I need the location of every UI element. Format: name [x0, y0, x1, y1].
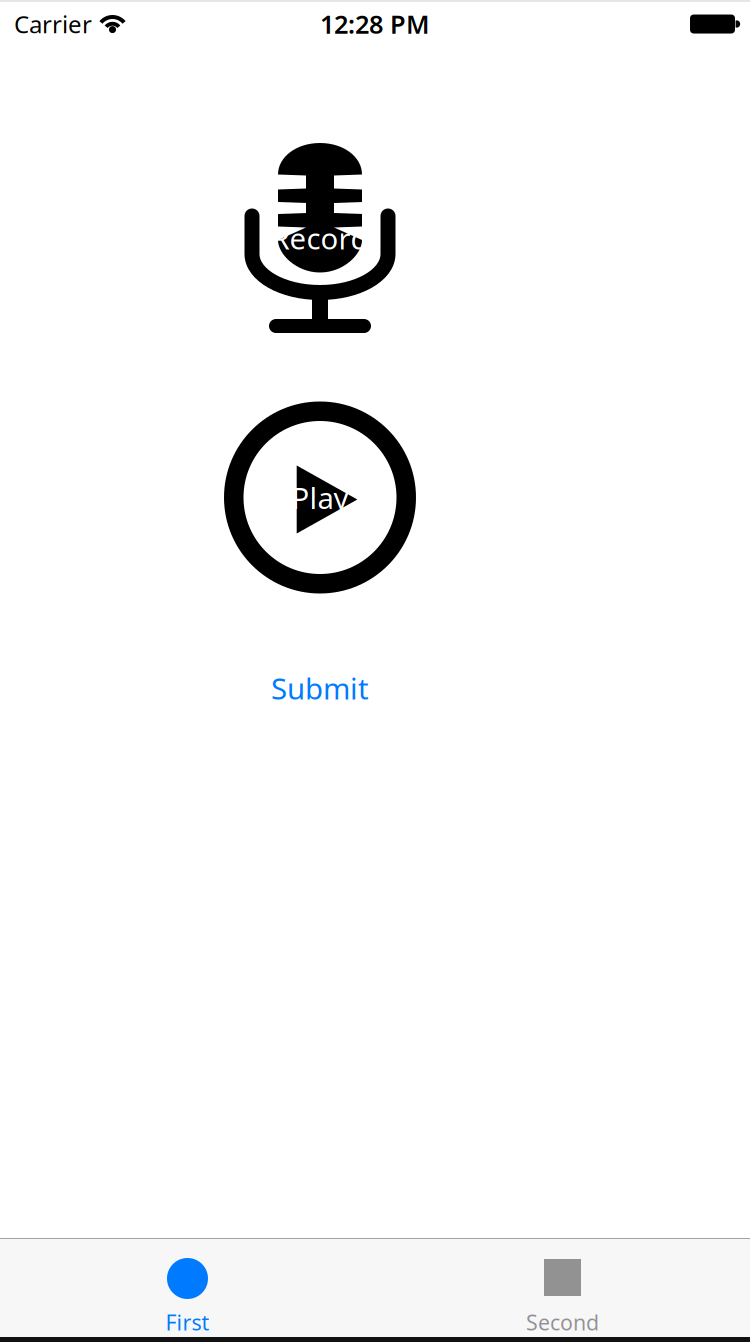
button[interactable]: Second	[375, 1239, 750, 1337]
staticText: Second	[526, 1308, 599, 1336]
staticText: First	[165, 1308, 209, 1336]
staticText: Record	[271, 218, 368, 257]
button[interactable]: First	[0, 1239, 375, 1337]
staticText: Play	[291, 478, 348, 517]
button[interactable]: Play	[220, 397, 420, 597]
staticText: Submit	[271, 668, 369, 707]
button[interactable]: Record	[240, 138, 400, 338]
button[interactable]: Submit	[220, 663, 420, 713]
staticText: 12:28 PM	[320, 7, 430, 41]
staticText: Carrier	[14, 8, 92, 40]
